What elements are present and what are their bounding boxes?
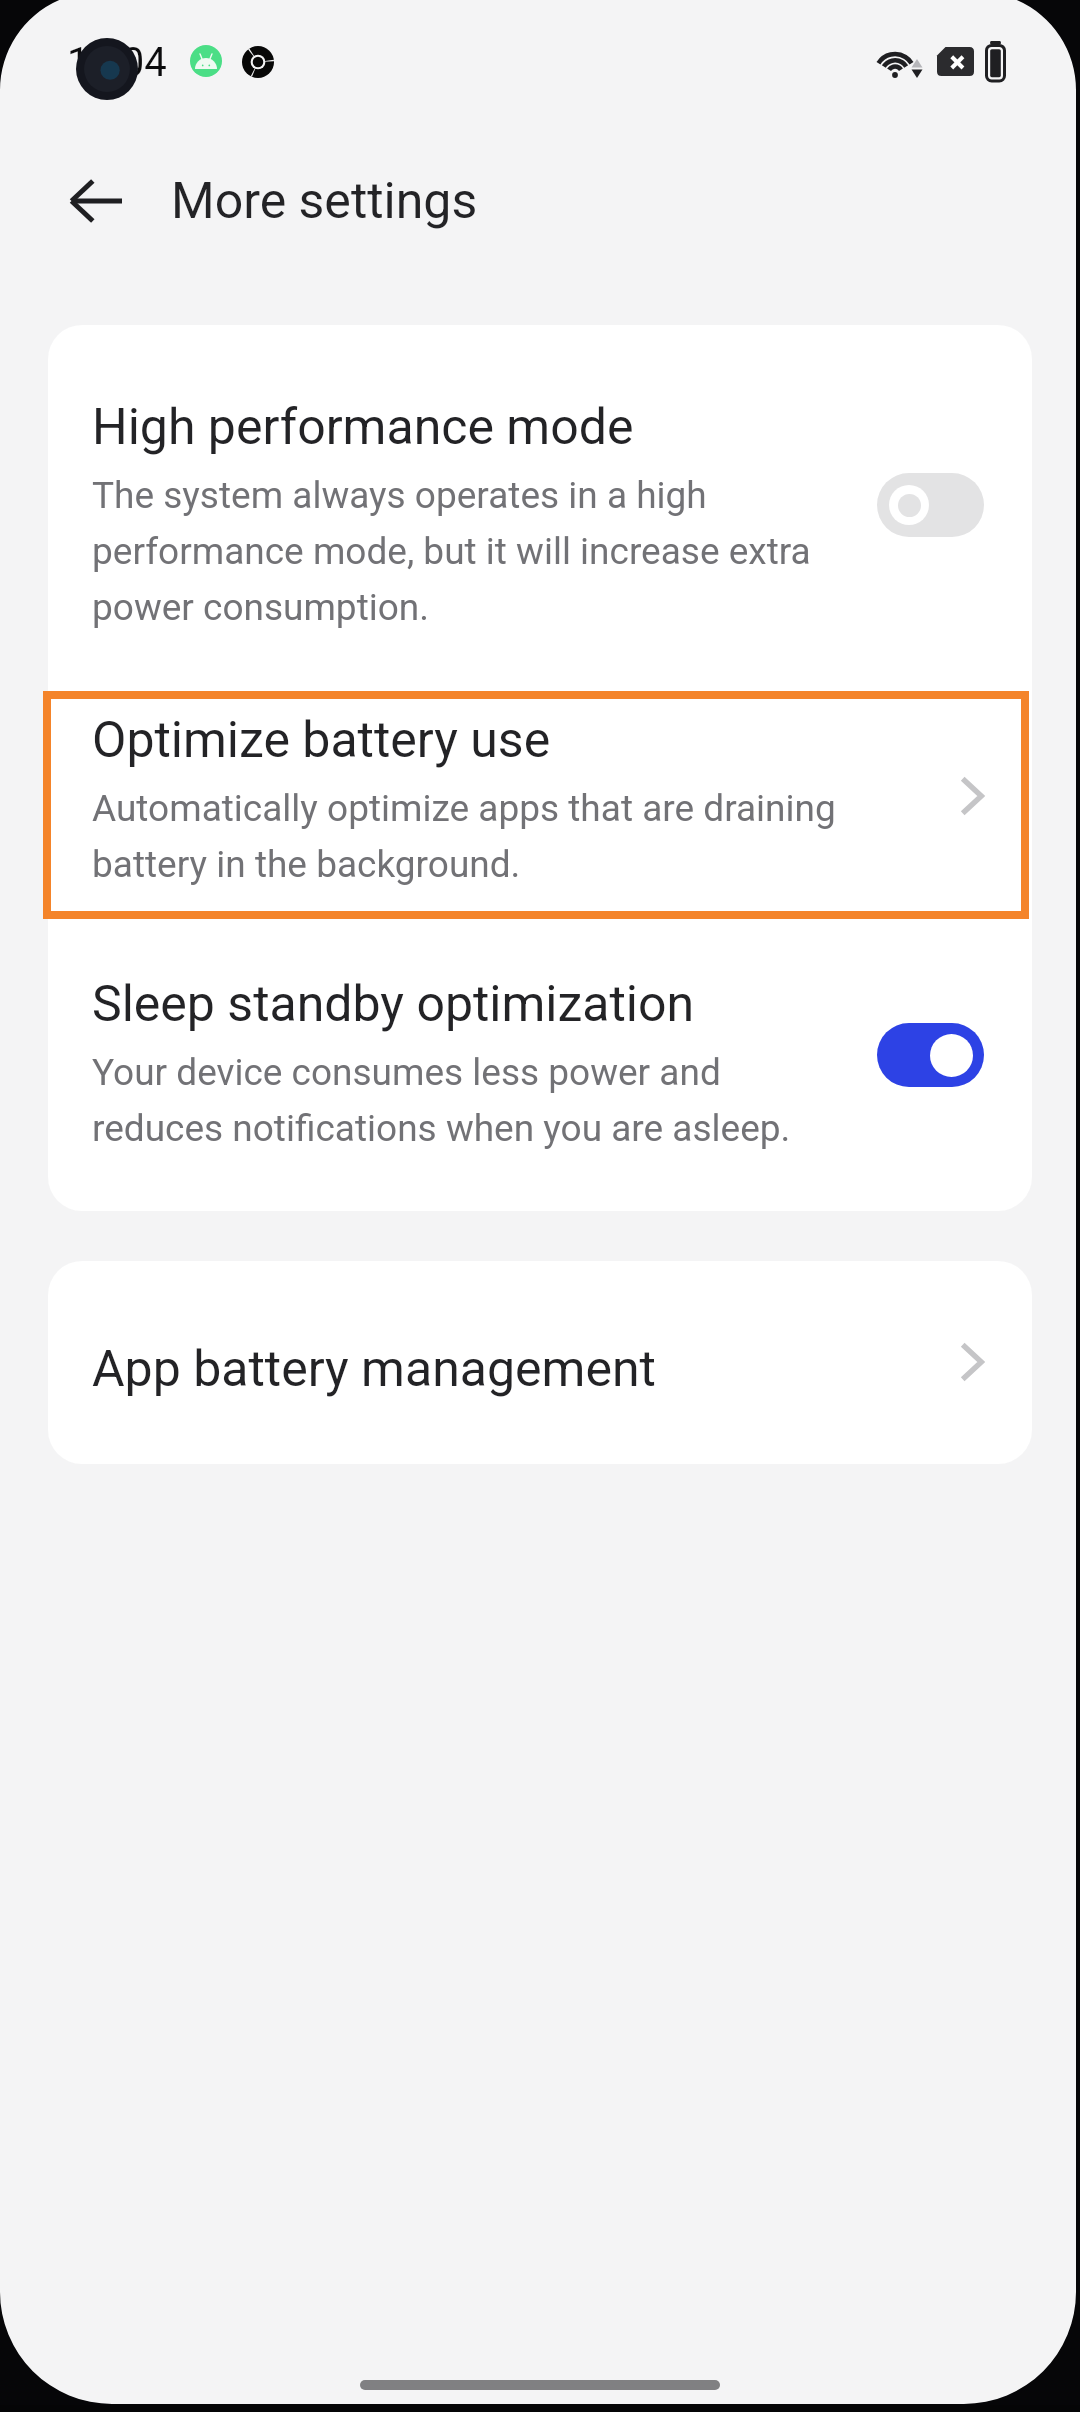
staticText: The system always operates in a high per… [92,464,847,632]
staticText: High performance mode [92,398,634,456]
button[interactable]: Switch off [877,473,984,537]
button[interactable]: Sleep standby optimization [48,919,1032,1211]
staticText: Sleep standby optimization [92,975,695,1033]
staticText: Automatically optimize apps that are dra… [92,777,847,889]
button[interactable]: Back [48,155,144,247]
button[interactable]: App battery management [48,1261,1032,1464]
button[interactable]: Optimize battery use [51,699,1029,911]
staticText: More settings [171,172,478,231]
button[interactable]: Switch on [877,1023,984,1087]
staticText: 10:04 [67,39,167,86]
staticText: Your device consumes less power and redu… [92,1041,847,1153]
staticText: App battery management [92,1340,656,1398]
button[interactable]: High performance mode [48,325,1032,691]
staticText: Optimize battery use [92,711,551,769]
button[interactable]: Home gesture bar [360,2380,720,2390]
